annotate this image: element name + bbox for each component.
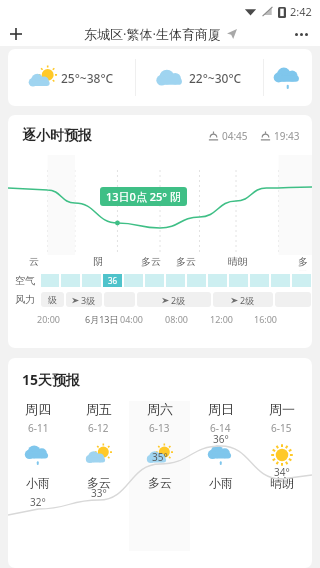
staticText: 多云: [176, 255, 196, 268]
staticText: 多云: [141, 255, 161, 268]
staticText: 33°: [91, 486, 107, 500]
button[interactable]: 周一: [251, 401, 312, 551]
button[interactable]: [264, 49, 312, 106]
staticText: 多云: [148, 475, 172, 490]
staticText: 小雨: [26, 475, 50, 490]
button[interactable]: 19:43: [260, 129, 300, 143]
staticText: 级: [48, 294, 57, 305]
staticText: 周日: [208, 401, 234, 417]
staticText: 15天预报: [22, 370, 81, 389]
staticText: 6-13: [149, 421, 170, 435]
staticText: 小雨: [209, 475, 233, 490]
staticText: 周一: [269, 401, 295, 417]
button[interactable]: More options: [290, 23, 312, 45]
button[interactable]: Add city: [6, 24, 26, 44]
button[interactable]: 周四: [8, 401, 68, 551]
staticText: 2级: [171, 294, 186, 306]
staticText: 逐小时预报: [22, 127, 92, 145]
staticText: 36°: [213, 432, 229, 446]
staticText: 多云: [87, 475, 111, 490]
staticText: 2:42: [290, 4, 312, 19]
staticText: 2级: [240, 294, 255, 306]
staticText: 6-12: [88, 421, 109, 435]
staticText: 阴: [93, 255, 103, 268]
staticText: 周五: [86, 401, 112, 417]
staticText: 36: [108, 275, 118, 286]
staticText: 35°: [152, 450, 168, 464]
button[interactable]: 25°~38°C: [8, 49, 135, 106]
staticText: 13日0点 25° 阴: [106, 189, 181, 204]
staticText: 云: [29, 255, 39, 268]
staticText: 晴朗: [228, 255, 248, 268]
staticText: 32°: [30, 495, 46, 509]
staticText: 04:00: [120, 313, 144, 325]
staticText: 6-11: [28, 421, 49, 435]
staticText: 6-15: [271, 421, 292, 435]
button[interactable]: 22°~30°C: [136, 49, 263, 106]
staticText: 20:00: [37, 313, 61, 325]
staticText: 25°~38°C: [61, 70, 114, 86]
button[interactable]: 周日: [190, 401, 251, 551]
staticText: 6月13日: [85, 313, 119, 325]
staticText: 19:43: [274, 129, 300, 143]
button[interactable]: 周五: [68, 401, 129, 551]
button[interactable]: 周六: [129, 401, 190, 551]
staticText: 多云: [298, 255, 312, 271]
staticText: 周六: [147, 401, 173, 417]
staticText: 16:00: [254, 313, 278, 325]
staticText: 12:00: [210, 313, 234, 325]
staticText: 晴朗: [270, 475, 294, 490]
staticText: 6-14: [210, 421, 231, 435]
staticText: 东城区·繁体·生体育商厦: [84, 25, 221, 43]
staticText: 风力: [15, 293, 35, 306]
staticText: 34°: [274, 465, 290, 479]
staticText: 周四: [25, 401, 51, 417]
staticText: 04:45: [222, 129, 248, 143]
button[interactable]: 04:45: [208, 129, 248, 143]
staticText: 22°~30°C: [189, 70, 242, 86]
staticText: 3级: [81, 294, 96, 306]
staticText: 空气: [15, 274, 35, 287]
staticText: 08:00: [165, 313, 189, 325]
